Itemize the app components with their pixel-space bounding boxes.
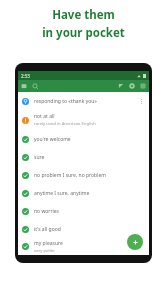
button[interactable]: More options [138,98,145,105]
button[interactable]: Menu [21,83,27,89]
button[interactable]: responding to «thank you» [18,92,149,110]
staticText: you're welcome [34,136,71,143]
button[interactable]: Bookmark [118,83,124,89]
button[interactable]: Add [127,234,143,250]
staticText: 2:53 [21,73,30,79]
button[interactable]: no problem I sure, no problem [18,166,149,184]
staticText: very polite [34,248,55,254]
staticText: Have them [52,7,115,23]
staticText: responding to «thank you» [34,98,97,105]
button[interactable]: it's all good [18,220,149,238]
staticText: my pleasure [34,240,63,247]
button[interactable]: Search [32,83,39,90]
staticText: not at all [34,113,55,120]
staticText: sure [34,154,45,161]
button[interactable]: sure [18,148,149,166]
button[interactable]: More options [140,83,146,89]
staticText: rarely used in American English [34,121,96,127]
button[interactable]: you're welcome [18,130,149,148]
staticText: in your pocket [42,25,125,41]
staticText: anytime I sure, anytime [34,190,90,197]
button[interactable]: anytime I sure, anytime [18,184,149,202]
button[interactable]: my pleasure [18,238,149,255]
staticText: no problem I sure, no problem [34,172,106,179]
staticText: no worries [34,208,60,215]
staticText: it's all good [34,226,61,233]
button[interactable]: no worries [18,202,149,220]
button[interactable]: not at all [18,110,149,130]
button[interactable]: Settings [129,83,135,89]
